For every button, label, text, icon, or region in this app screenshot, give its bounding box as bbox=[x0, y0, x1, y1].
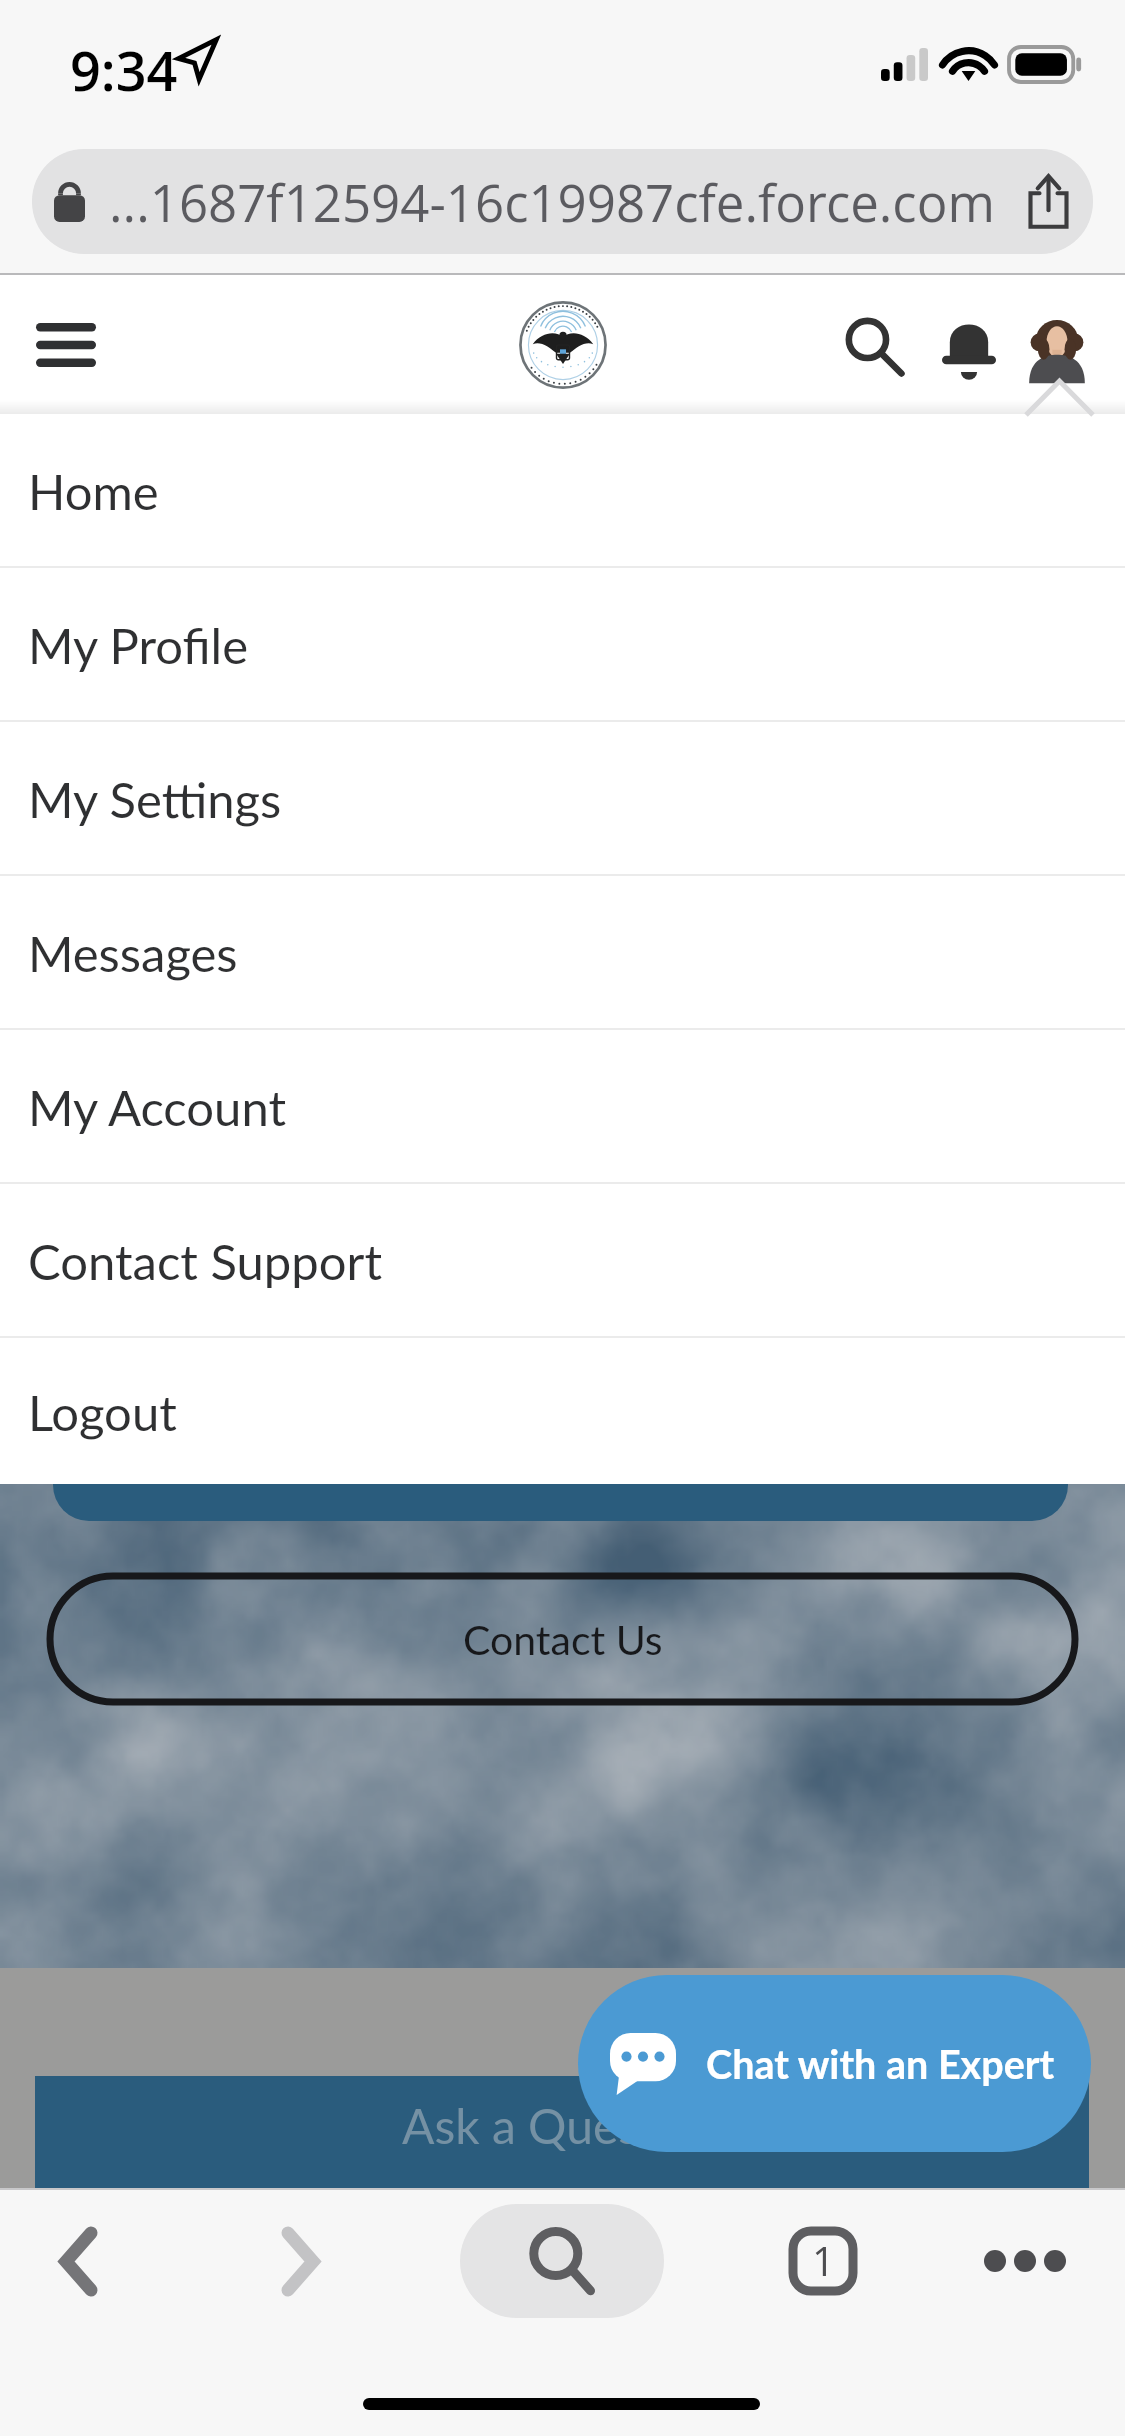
staticText: ...1687f12594-16c19987cfe.force.com bbox=[109, 167, 995, 236]
other: Share bbox=[1026, 174, 1071, 229]
button[interactable]: Forward bbox=[240, 2201, 360, 2321]
button[interactable]: Open navigation menu bbox=[22, 302, 110, 388]
button[interactable]: Contact Support bbox=[0, 1184, 1125, 1336]
button[interactable]: Contact Us bbox=[50, 1576, 1075, 1702]
button[interactable]: Home bbox=[0, 414, 1125, 566]
staticText: Home bbox=[28, 462, 159, 521]
button[interactable]: Profile menu bbox=[1028, 320, 1086, 382]
staticText: 1 bbox=[812, 2233, 835, 2287]
staticText: Chat with an Expert bbox=[706, 2040, 1055, 2087]
staticText: Ask a Question bbox=[402, 2097, 723, 2155]
button[interactable]: Messages bbox=[0, 876, 1125, 1028]
button[interactable]: Logout bbox=[0, 1338, 1125, 1484]
staticText: Contact Support bbox=[28, 1232, 382, 1291]
button[interactable]: My Settings bbox=[0, 722, 1125, 874]
staticText: My Settings bbox=[28, 770, 282, 829]
button[interactable]: Search bbox=[460, 2204, 664, 2318]
staticText: Contact Us bbox=[463, 1615, 663, 1664]
button[interactable]: Search bbox=[836, 308, 914, 386]
button[interactable]: ...1687f12594-16c19987cfe.force.com bbox=[32, 149, 1093, 254]
staticText: Logout bbox=[28, 1383, 177, 1442]
button[interactable]: My Account bbox=[0, 1030, 1125, 1182]
button[interactable]: Tabs bbox=[763, 2201, 883, 2321]
staticText: My Account bbox=[28, 1078, 286, 1137]
staticText: 9:34 bbox=[70, 33, 178, 107]
staticText: My Profile bbox=[28, 616, 249, 675]
button[interactable]: My Profile bbox=[0, 568, 1125, 720]
button[interactable]: More options bbox=[965, 2201, 1085, 2321]
button[interactable]: Ask a Question bbox=[35, 2076, 1089, 2188]
button[interactable]: Department of the Future home bbox=[518, 300, 608, 390]
button[interactable]: Back bbox=[18, 2201, 138, 2321]
staticText: Messages bbox=[28, 924, 238, 983]
button[interactable]: Notifications bbox=[932, 308, 1006, 382]
button[interactable]: Chat with an Expert bbox=[578, 1975, 1091, 2152]
